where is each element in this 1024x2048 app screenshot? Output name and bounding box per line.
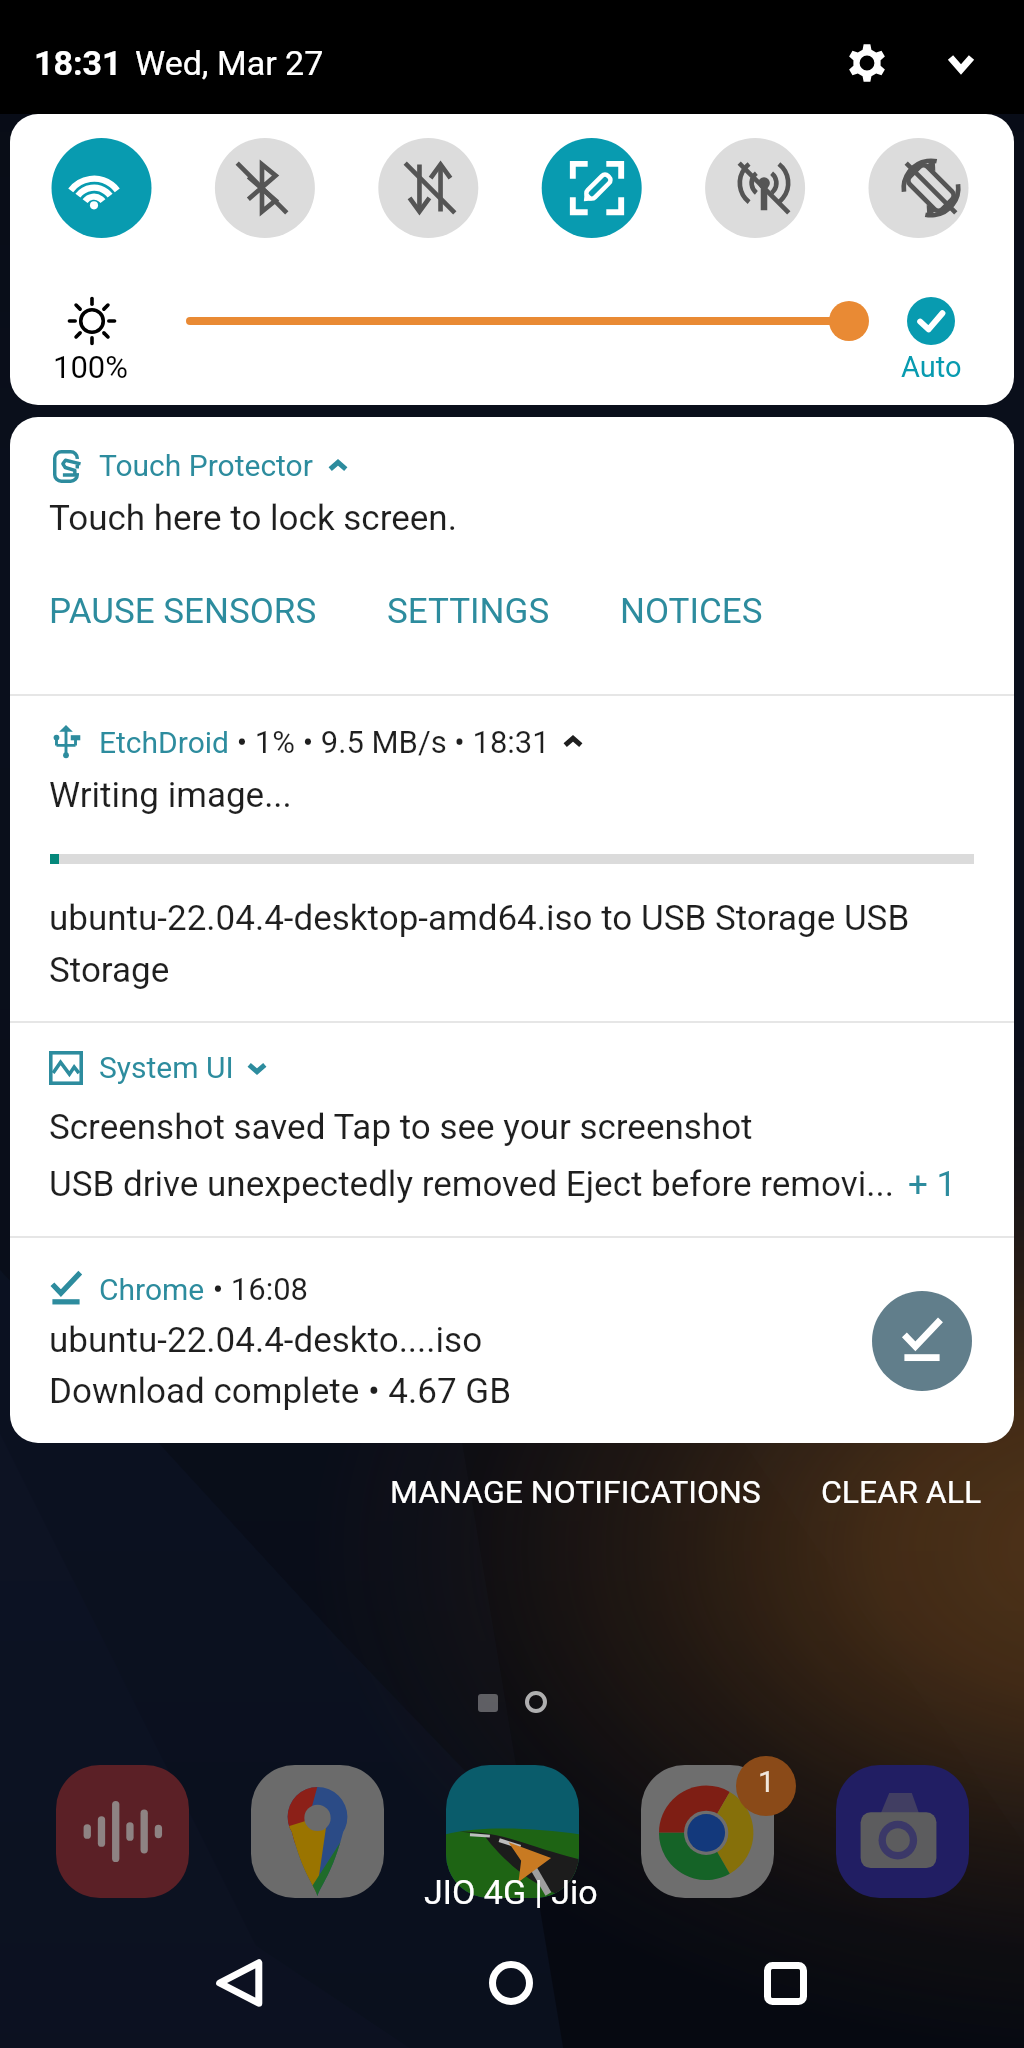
- staticText: SETTINGS: [387, 591, 550, 632]
- staticText: 1: [758, 1764, 775, 1796]
- staticText: Auto: [901, 350, 962, 384]
- button[interactable]: EtchDroid: [10, 696, 1014, 1021]
- button[interactable]: Chrome: [641, 1765, 774, 1898]
- staticText: ubuntu-22.04.4-desktop-amd64.iso to USB …: [49, 898, 951, 991]
- button[interactable]: Jio: [446, 1765, 579, 1898]
- staticText: Writing image...: [49, 775, 292, 816]
- button[interactable]: Settings: [835, 31, 899, 95]
- staticText: USB drive unexpectedly removed Eject bef…: [49, 1164, 894, 1205]
- button[interactable]: Hotspot: [680, 114, 847, 262]
- staticText: NOTICES: [620, 591, 763, 632]
- button[interactable]: Mobile data: [346, 114, 513, 262]
- staticText: PAUSE SENSORS: [49, 591, 317, 632]
- staticText: Touch Protector: [99, 448, 313, 483]
- button[interactable]: MANAGE NOTIFICATIONS: [380, 1463, 771, 1521]
- button[interactable]: PAUSE SENSORS: [49, 591, 317, 632]
- button[interactable]: Home: [466, 1938, 556, 2028]
- staticText: Chrome: [99, 1272, 205, 1307]
- button[interactable]: Touch Protector: [10, 417, 1014, 694]
- staticText: MANAGE NOTIFICATIONS: [390, 1473, 761, 1511]
- staticText: ubuntu-22.04.4-deskto....iso: [49, 1320, 483, 1361]
- button[interactable]: Recorder: [56, 1765, 189, 1898]
- button[interactable]: Back: [194, 1938, 284, 2028]
- button[interactable]: Camera: [836, 1765, 969, 1898]
- button[interactable]: System UI: [10, 1023, 1014, 1236]
- button[interactable]: Auto: [886, 297, 976, 384]
- staticText: 100%: [53, 349, 128, 385]
- staticText: • 1% • 9.5 MB/s • 18:31: [229, 724, 550, 760]
- button[interactable]: Bluetooth: [178, 114, 346, 262]
- staticText: Screenshot saved Tap to see your screens…: [49, 1107, 753, 1148]
- button[interactable]: Recents: [740, 1938, 830, 2028]
- button[interactable]: SETTINGS: [387, 591, 550, 632]
- staticText: CLEAR ALL: [821, 1473, 982, 1511]
- staticText: • 16:08: [205, 1271, 309, 1307]
- staticText: System UI: [99, 1050, 234, 1085]
- button[interactable]: NOTICES: [620, 591, 763, 632]
- button[interactable]: CLEAR ALL: [811, 1463, 992, 1521]
- button[interactable]: Chrome: [10, 1238, 1014, 1443]
- button[interactable]: Maps: [251, 1765, 384, 1898]
- button[interactable]: Auto-rotate: [847, 114, 1014, 262]
- staticText: + 1: [908, 1164, 957, 1205]
- staticText: Touch here to lock screen.: [49, 498, 457, 539]
- button[interactable]: Screenshot: [513, 114, 680, 262]
- button[interactable]: Wi-Fi: [10, 114, 178, 262]
- staticText: JIO 4G | Jio: [424, 1872, 598, 1912]
- button[interactable]: Collapse: [929, 31, 993, 95]
- staticText: Download complete • 4.67 GB: [49, 1371, 511, 1412]
- staticText: EtchDroid: [99, 725, 229, 760]
- staticText: Wed, Mar 27: [135, 43, 324, 83]
- staticText: 18:31: [34, 43, 122, 83]
